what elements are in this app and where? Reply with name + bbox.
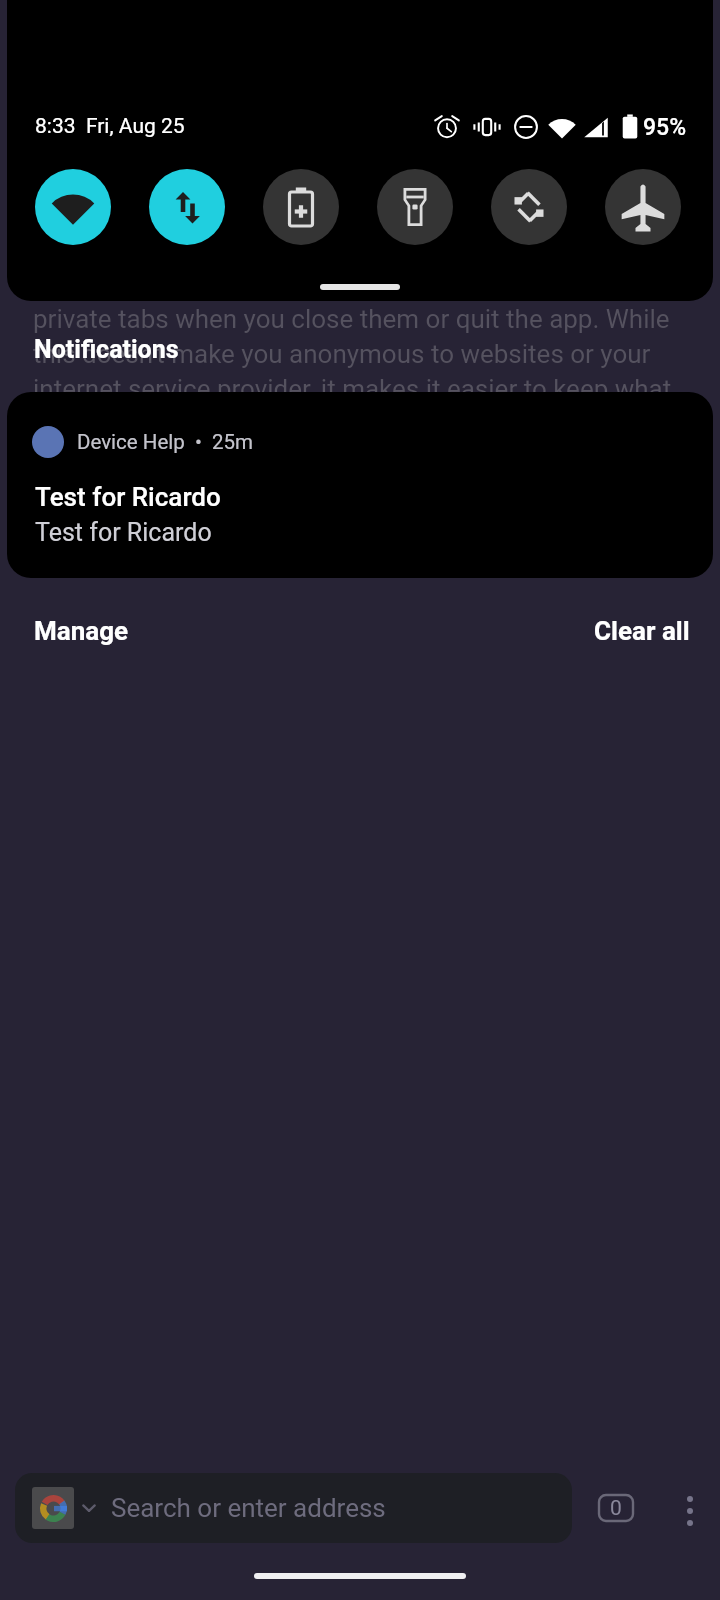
button[interactable]: Clear all [581,604,703,658]
staticText: Clear all [594,616,690,646]
button[interactable]: Auto-rotate [491,169,567,245]
staticText: Test for Ricardo [35,518,212,547]
staticText: Test for Ricardo [35,482,221,512]
staticText: Manage [34,616,129,646]
staticText: 0 [610,1496,622,1521]
button[interactable]: Wi-Fi [35,169,111,245]
button[interactable]: Airplane mode [605,169,681,245]
button[interactable]: Search or enter address [15,1473,572,1543]
button[interactable]: Flashlight [377,169,453,245]
staticText: Device Help • 25m [77,430,254,454]
staticText: Search or enter address [111,1493,386,1523]
staticText: 95% [643,114,687,141]
button[interactable]: Battery Saver [263,169,339,245]
staticText: Notifications [34,335,179,364]
button[interactable]: Manage [21,604,142,658]
staticText: private tabs when you close them or quit… [33,304,698,404]
button[interactable]: Device Help • 25m [7,392,713,578]
staticText: 8:33 Fri, Aug 25 [35,114,185,139]
button[interactable]: More options [664,1481,716,1541]
button[interactable]: Tabs [596,1488,636,1528]
button[interactable]: Mobile data [149,169,225,245]
